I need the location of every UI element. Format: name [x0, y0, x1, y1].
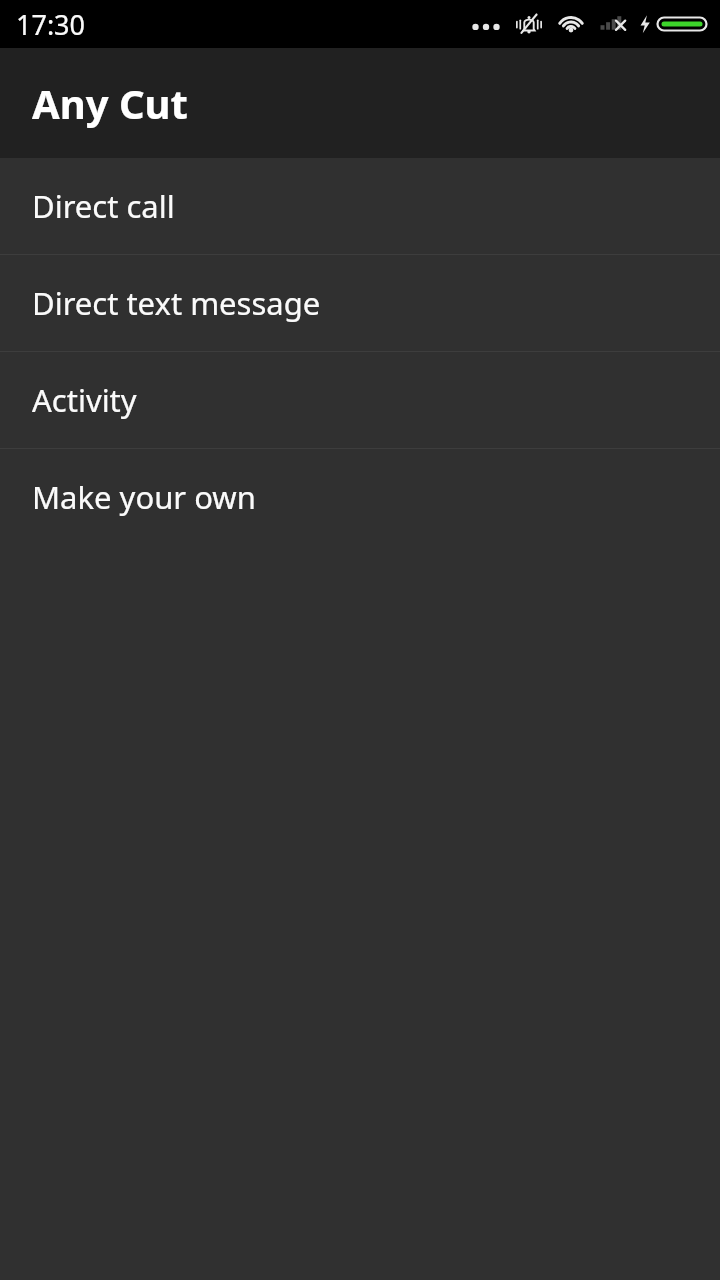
staticText: 17:30 — [16, 6, 86, 43]
button[interactable]: Direct call — [0, 158, 720, 254]
staticText: Make your own — [32, 476, 256, 518]
button[interactable]: Activity — [0, 352, 720, 448]
button[interactable]: Make your own — [0, 449, 720, 545]
staticText: Activity — [32, 379, 137, 421]
staticText: Direct call — [32, 185, 175, 227]
staticText: Any Cut — [32, 76, 188, 130]
button[interactable]: Direct text message — [0, 255, 720, 351]
staticText: Direct text message — [32, 282, 321, 324]
